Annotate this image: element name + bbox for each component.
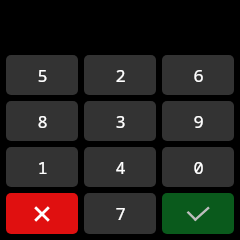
button[interactable]: 2 (84, 55, 156, 95)
staticText: 0 (193, 156, 204, 179)
staticText: 5 (37, 64, 48, 87)
button[interactable]: 9 (162, 101, 234, 141)
button[interactable]: 3 (84, 101, 156, 141)
button[interactable]: 4 (84, 147, 156, 187)
staticText: 2 (115, 64, 126, 87)
button[interactable]: 5 (6, 55, 78, 95)
button[interactable]: 7 (84, 193, 156, 234)
staticText: 4 (115, 156, 126, 179)
button[interactable]: Confirm (162, 193, 234, 234)
button[interactable]: 1 (6, 147, 78, 187)
staticText: 9 (193, 110, 204, 133)
button[interactable]: 8 (6, 101, 78, 141)
staticText: 7 (115, 202, 126, 225)
button[interactable]: 6 (162, 55, 234, 95)
staticText: 3 (115, 110, 126, 133)
staticText: 8 (37, 110, 48, 133)
button[interactable]: Cancel (6, 193, 78, 234)
staticText: 1 (37, 156, 48, 179)
staticText: 6 (193, 64, 204, 87)
button[interactable]: 0 (162, 147, 234, 187)
